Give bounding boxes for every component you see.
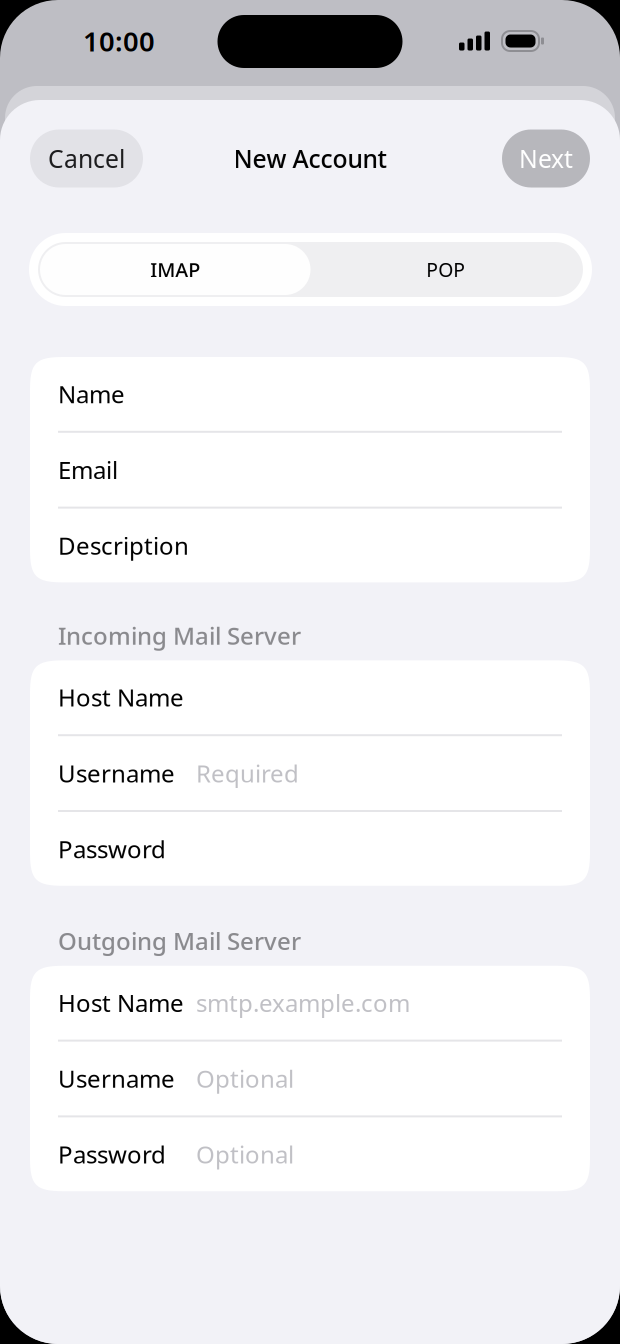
button[interactable]: Name bbox=[30, 357, 590, 431]
staticText: Description bbox=[58, 530, 189, 561]
staticText: Optional bbox=[196, 1138, 294, 1170]
staticText: Email bbox=[58, 454, 118, 486]
staticText: Outgoing Mail Server bbox=[58, 925, 301, 957]
staticText: Cancel bbox=[48, 142, 125, 175]
button[interactable]: Host Name bbox=[30, 660, 590, 734]
staticText: Name bbox=[58, 378, 125, 410]
staticText: Host Name bbox=[58, 987, 184, 1019]
button[interactable]: IMAP bbox=[40, 244, 310, 295]
staticText: smtp.example.com bbox=[196, 987, 410, 1019]
staticText: Required bbox=[196, 757, 299, 789]
button[interactable]: Next bbox=[502, 129, 590, 187]
staticText: Next bbox=[519, 142, 573, 175]
button[interactable]: Description bbox=[30, 509, 590, 582]
button[interactable]: Cancel bbox=[30, 129, 143, 187]
staticText: 10:00 bbox=[83, 23, 155, 59]
button[interactable]: Username bbox=[30, 1042, 590, 1115]
button[interactable]: Email bbox=[30, 433, 590, 507]
button[interactable]: Password bbox=[30, 812, 590, 886]
staticText: Host Name bbox=[58, 681, 184, 713]
staticText: New Account bbox=[233, 142, 386, 175]
button[interactable]: Username bbox=[30, 736, 590, 810]
staticText: Incoming Mail Server bbox=[58, 619, 301, 651]
staticText: Password bbox=[58, 833, 166, 865]
staticText: Username bbox=[58, 1063, 175, 1094]
staticText: Password bbox=[58, 1138, 166, 1170]
staticText: Optional bbox=[196, 1063, 294, 1094]
button[interactable]: Host Name bbox=[30, 966, 590, 1040]
button[interactable]: POP bbox=[310, 244, 581, 295]
staticText: POP bbox=[426, 257, 465, 282]
staticText: IMAP bbox=[150, 256, 200, 283]
button[interactable]: Password bbox=[30, 1117, 590, 1191]
staticText: Username bbox=[58, 757, 175, 789]
